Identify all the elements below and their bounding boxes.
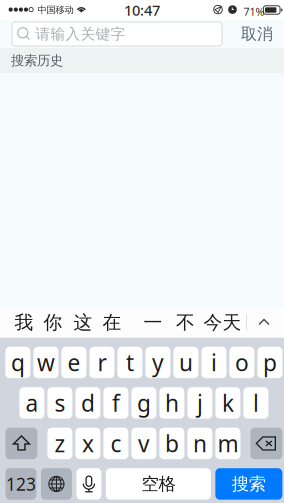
button[interactable]: i — [201, 347, 226, 378]
staticText: v — [138, 428, 150, 458]
staticText: r — [97, 347, 106, 377]
button[interactable]: h — [159, 387, 184, 419]
button[interactable]: 这 — [63, 307, 103, 338]
button[interactable]: a — [19, 387, 44, 419]
button[interactable]: Switch keyboard — [41, 468, 72, 500]
staticText: 123 — [6, 472, 36, 495]
button[interactable]: 一 — [133, 307, 173, 338]
button[interactable]: k — [215, 387, 240, 419]
button[interactable]: Dictation — [76, 468, 101, 500]
button[interactable]: g — [131, 387, 156, 419]
button[interactable]: r — [89, 347, 114, 378]
staticText: 10:47 — [124, 0, 160, 20]
staticText: c — [110, 428, 121, 458]
button[interactable]: 你 — [33, 307, 73, 338]
staticText: 今天 — [203, 311, 241, 334]
button[interactable]: 在 — [92, 307, 132, 338]
staticText: y — [152, 347, 164, 377]
staticText: i — [211, 347, 217, 377]
staticText: k — [222, 388, 234, 418]
staticText: 空格 — [141, 473, 175, 495]
button[interactable]: Shift — [5, 428, 37, 459]
staticText: x — [82, 428, 94, 458]
button[interactable]: t — [117, 347, 142, 378]
staticText: u — [179, 347, 193, 377]
button[interactable]: b — [159, 428, 184, 459]
staticText: j — [197, 388, 203, 418]
button[interactable]: 取消 — [234, 22, 280, 46]
button[interactable]: s — [47, 387, 72, 419]
staticText: d — [81, 388, 95, 418]
button[interactable]: o — [229, 347, 254, 378]
button[interactable]: j — [187, 387, 212, 419]
staticText: g — [137, 388, 151, 418]
staticText: 中国移动 — [37, 4, 73, 16]
staticText: 搜索 — [232, 473, 266, 495]
staticText: z — [54, 428, 65, 458]
button[interactable]: f — [103, 387, 128, 419]
staticText: m — [217, 428, 238, 458]
staticText: h — [165, 388, 179, 418]
staticText: 搜索历史 — [11, 52, 63, 69]
button[interactable]: x — [75, 428, 100, 459]
button[interactable]: 今天 — [202, 307, 242, 338]
button[interactable]: c — [103, 428, 128, 459]
button[interactable]: e — [61, 347, 86, 378]
staticText: a — [25, 388, 38, 418]
staticText: 我 — [14, 311, 33, 334]
staticText: f — [112, 388, 120, 418]
button[interactable]: 不 — [165, 307, 205, 338]
button[interactable]: 123 — [5, 468, 36, 500]
staticText: q — [11, 347, 25, 377]
button[interactable]: m — [215, 428, 240, 459]
button[interactable]: n — [187, 428, 212, 459]
button[interactable]: p — [257, 347, 282, 378]
button[interactable]: Delete — [250, 428, 282, 459]
staticText: 你 — [43, 311, 62, 334]
button[interactable]: 搜索 — [215, 468, 282, 500]
button[interactable]: v — [131, 428, 156, 459]
button[interactable]: w — [33, 347, 58, 378]
staticText: p — [263, 347, 277, 377]
button[interactable]: 我 — [4, 307, 44, 338]
staticText: e — [67, 347, 80, 377]
button[interactable]: y — [145, 347, 170, 378]
staticText: n — [193, 428, 207, 458]
staticText: w — [37, 347, 55, 377]
button[interactable]: q — [5, 347, 30, 378]
staticText: l — [253, 388, 259, 418]
button[interactable]: Collapse keyboard — [246, 307, 282, 338]
staticText: 在 — [102, 311, 121, 334]
staticText: s — [54, 388, 65, 418]
button[interactable]: l — [243, 387, 268, 419]
staticText: 71% — [243, 5, 264, 19]
staticText: o — [235, 347, 249, 377]
button[interactable]: 空格 — [106, 468, 211, 500]
staticText: 一 — [143, 311, 162, 334]
staticText: b — [165, 428, 179, 458]
staticText: 不 — [176, 311, 195, 334]
staticText: 这 — [73, 311, 92, 334]
button[interactable]: z — [47, 428, 72, 459]
button[interactable]: d — [75, 387, 100, 419]
staticText: 请输入关键字 — [35, 25, 125, 43]
staticText: 取消 — [241, 24, 273, 44]
button[interactable]: u — [173, 347, 198, 378]
staticText: t — [126, 347, 134, 377]
